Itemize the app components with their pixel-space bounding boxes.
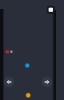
button[interactable]: Forward: [42, 77, 52, 87]
button[interactable]: Back: [4, 77, 14, 87]
button[interactable]: Status: [47, 6, 55, 14]
